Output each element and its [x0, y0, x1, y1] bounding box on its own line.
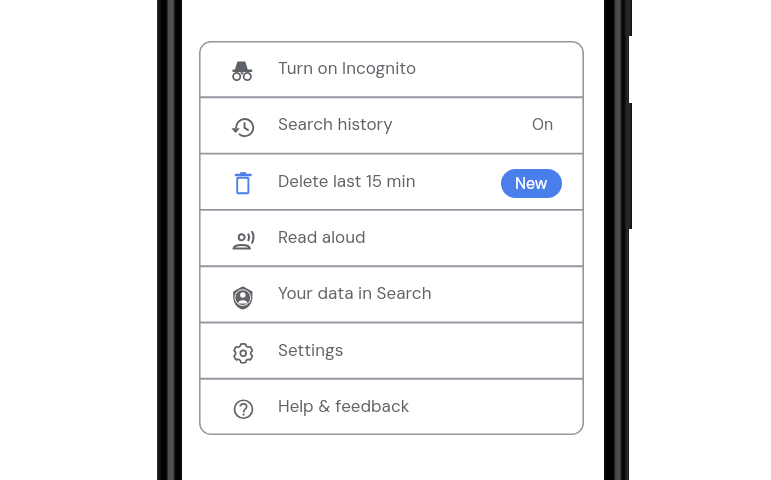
staticText: Delete last 15 min [278, 170, 416, 192]
button[interactable]: Settings [199, 323, 584, 379]
button[interactable]: Your data in Search [199, 266, 584, 322]
button[interactable]: Turn on Incognito [199, 41, 584, 97]
button[interactable]: Help & feedback [199, 379, 584, 435]
staticText: Read aloud [278, 226, 366, 248]
button[interactable]: Read aloud [199, 210, 584, 266]
button[interactable]: Delete last 15 min [199, 154, 584, 210]
staticText: Help & feedback [278, 395, 410, 417]
staticText: New [515, 173, 548, 194]
button[interactable]: New [501, 169, 562, 198]
staticText: Search history [278, 113, 393, 135]
staticText: Turn on Incognito [278, 57, 417, 79]
staticText: Your data in Search [278, 282, 432, 304]
button[interactable]: Search history [199, 97, 584, 153]
staticText: Settings [278, 339, 344, 361]
staticText: On [532, 114, 554, 135]
